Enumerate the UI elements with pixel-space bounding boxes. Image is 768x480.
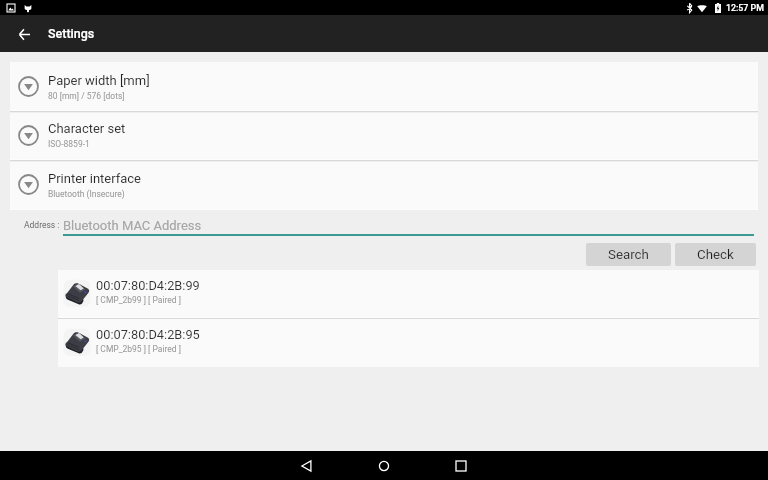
staticText: Paper width [mm] — [48, 73, 150, 88]
staticText: 00:07:80:D4:2B:99 — [96, 278, 200, 293]
button[interactable]: Printer interface — [10, 162, 758, 209]
staticText: ISO-8859-1 — [48, 139, 90, 149]
button[interactable]: Paper width [mm] — [10, 62, 758, 110]
staticText: 80 [mm] / 576 [dots] — [48, 91, 125, 101]
staticText: 00:07:80:D4:2B:95 — [96, 327, 200, 342]
staticText: Printer interface — [48, 171, 141, 186]
staticText: Search — [608, 247, 649, 263]
staticText: Bluetooth (Insecure) — [48, 189, 125, 199]
button[interactable]: Recent apps — [446, 451, 475, 480]
staticText: [ CMP_2b95 ] [ Paired ] — [96, 344, 181, 354]
button[interactable]: 00:07:80:D4:2B:99 — [58, 270, 759, 317]
button[interactable]: Back — [292, 451, 321, 480]
staticText: Settings — [48, 26, 95, 41]
staticText: Address : — [24, 220, 60, 230]
button[interactable]: 00:07:80:D4:2B:95 — [58, 319, 759, 367]
button[interactable]: Check — [675, 243, 756, 266]
staticText: Bluetooth MAC Address — [63, 218, 202, 233]
staticText: Check — [697, 247, 734, 263]
button[interactable]: Character set — [10, 113, 758, 159]
staticText: 12:57 PM — [726, 3, 764, 13]
button[interactable]: Home — [369, 451, 398, 480]
staticText: [ CMP_2b99 ] [ Paired ] — [96, 295, 181, 305]
button[interactable]: Navigate up — [9, 19, 39, 49]
staticText: Character set — [48, 121, 126, 136]
button[interactable]: Search — [586, 243, 671, 266]
